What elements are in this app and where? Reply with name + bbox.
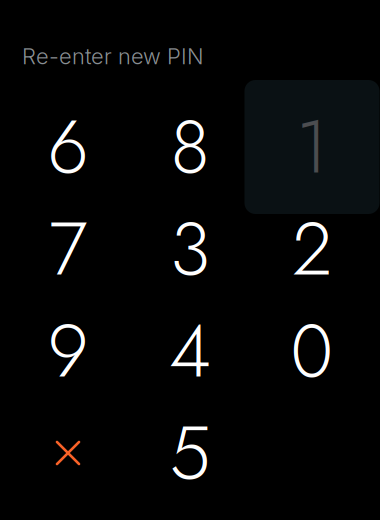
button[interactable]: 1	[251, 96, 373, 198]
button[interactable]: 8	[129, 96, 251, 198]
staticText: 6	[47, 94, 88, 200]
button[interactable]: 5	[129, 402, 251, 504]
button[interactable]: 7	[7, 198, 129, 300]
staticText: 8	[170, 94, 209, 200]
staticText: 9	[47, 298, 88, 404]
button[interactable]: 2	[251, 198, 373, 300]
staticText: 2	[292, 196, 332, 302]
button[interactable]: 4	[129, 300, 251, 402]
staticText: 5	[169, 400, 210, 506]
staticText: 4	[169, 298, 211, 404]
staticText: 3	[170, 196, 210, 302]
button[interactable]: 3	[129, 198, 251, 300]
staticText: Re-enter new PIN	[22, 43, 204, 70]
button[interactable]: 6	[7, 96, 129, 198]
staticText: 0	[290, 298, 333, 404]
button[interactable]: 9	[7, 300, 129, 402]
button[interactable]: 0	[251, 300, 373, 402]
button[interactable]: Delete	[7, 402, 129, 504]
staticText: 1	[296, 94, 328, 200]
staticText: 7	[49, 196, 87, 302]
